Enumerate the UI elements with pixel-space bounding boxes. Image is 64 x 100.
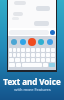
button[interactable] bbox=[51, 53, 55, 57]
button[interactable] bbox=[41, 48, 45, 52]
button[interactable] bbox=[51, 48, 55, 52]
button[interactable] bbox=[9, 48, 12, 52]
button[interactable] bbox=[13, 12, 23, 16]
button[interactable] bbox=[21, 53, 25, 57]
button[interactable]: Emoji bbox=[11, 39, 17, 45]
button[interactable] bbox=[21, 58, 25, 62]
button[interactable] bbox=[41, 58, 45, 62]
button[interactable] bbox=[17, 53, 20, 57]
button[interactable] bbox=[9, 63, 15, 67]
button[interactable]: Send bbox=[50, 30, 55, 35]
button[interactable] bbox=[15, 58, 20, 62]
staticText: Text and Voice bbox=[3, 76, 61, 87]
button[interactable] bbox=[26, 48, 30, 52]
button[interactable] bbox=[14, 1, 26, 5]
button[interactable] bbox=[36, 58, 40, 62]
button[interactable] bbox=[46, 53, 50, 57]
button[interactable] bbox=[46, 48, 50, 52]
button[interactable] bbox=[9, 58, 14, 62]
button[interactable] bbox=[31, 53, 35, 57]
button[interactable] bbox=[36, 48, 40, 52]
button[interactable] bbox=[36, 6, 50, 11]
button[interactable] bbox=[26, 53, 30, 57]
button[interactable] bbox=[43, 63, 48, 67]
button[interactable] bbox=[49, 63, 55, 67]
button[interactable] bbox=[34, 21, 49, 26]
button[interactable] bbox=[31, 58, 35, 62]
button[interactable] bbox=[21, 48, 25, 52]
staticText: with more Features bbox=[14, 87, 51, 92]
button[interactable] bbox=[41, 53, 45, 57]
button[interactable] bbox=[13, 48, 16, 52]
button[interactable] bbox=[12, 17, 19, 20]
button[interactable] bbox=[9, 53, 12, 57]
button[interactable] bbox=[51, 58, 55, 62]
button[interactable] bbox=[13, 53, 16, 57]
button[interactable] bbox=[46, 58, 50, 62]
button[interactable]: Emoji bbox=[20, 39, 26, 45]
button[interactable] bbox=[31, 48, 35, 52]
button[interactable] bbox=[17, 48, 20, 52]
button[interactable]: Emoji bbox=[38, 39, 44, 45]
button[interactable] bbox=[36, 53, 40, 57]
button[interactable]: Emoji bbox=[28, 38, 36, 46]
button[interactable]: Emoji bbox=[47, 39, 53, 45]
button[interactable] bbox=[26, 58, 30, 62]
button[interactable] bbox=[16, 63, 21, 67]
